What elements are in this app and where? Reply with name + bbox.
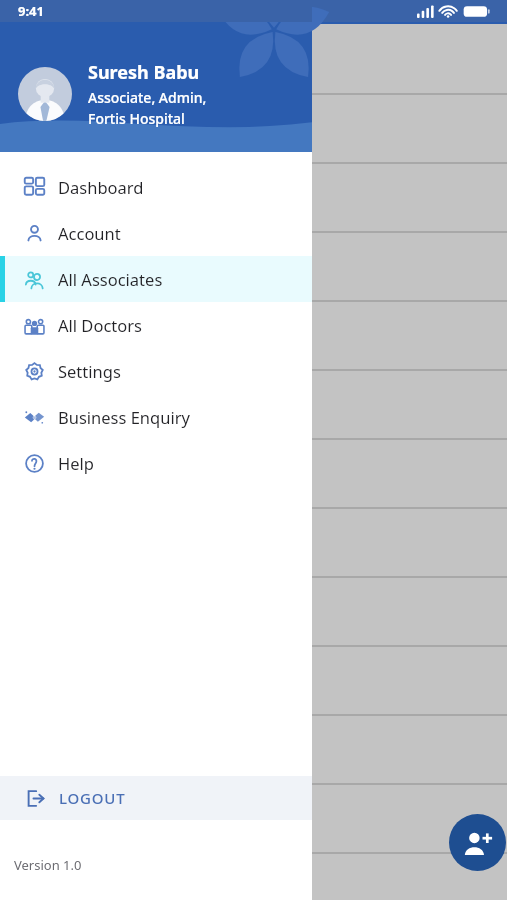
staticText: All Doctors	[58, 314, 142, 336]
button[interactable]: Business Enquiry	[0, 394, 312, 440]
staticText: Dashboard	[58, 176, 144, 198]
button[interactable]: Account	[0, 210, 312, 256]
staticText: Account	[58, 222, 121, 244]
staticText: Suresh Babu	[88, 60, 200, 85]
staticText: 9:41	[18, 2, 44, 20]
button[interactable]: All Doctors	[0, 302, 312, 348]
button[interactable]: LOGOUT	[0, 776, 312, 820]
staticText: Associate, Admin,	[88, 88, 207, 107]
button[interactable]: Dashboard	[0, 164, 312, 210]
staticText: All Associates	[58, 268, 163, 290]
button[interactable]: Settings	[0, 348, 312, 394]
staticText: Business Enquiry	[58, 406, 190, 428]
button[interactable]: Add associate	[449, 814, 506, 871]
button[interactable]: All Associates	[0, 256, 312, 302]
staticText: Settings	[58, 360, 121, 382]
button[interactable]: Suresh Babu	[18, 60, 207, 128]
staticText: Fortis Hospital	[88, 109, 185, 128]
staticText: Help	[58, 452, 94, 474]
button[interactable]: Help	[0, 440, 312, 486]
staticText: LOGOUT	[59, 788, 126, 808]
staticText: Version 1.0	[14, 856, 82, 874]
